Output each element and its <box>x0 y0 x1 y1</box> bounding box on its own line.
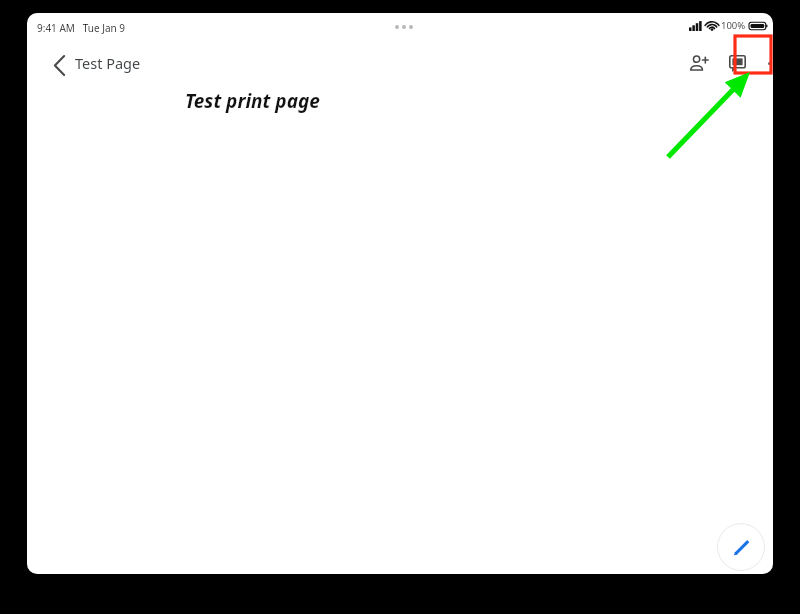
button[interactable]: Edit <box>717 523 765 571</box>
staticText: 9:41 AM Tue Jan 9 <box>37 21 126 35</box>
staticText: Test print page <box>185 88 320 114</box>
button[interactable]: More options <box>755 43 773 83</box>
button[interactable]: Comments <box>717 43 757 83</box>
staticText: Test Page <box>75 53 141 73</box>
button[interactable]: Add people <box>678 43 718 83</box>
button[interactable]: Back <box>37 43 81 87</box>
staticText: 100% <box>721 19 746 32</box>
